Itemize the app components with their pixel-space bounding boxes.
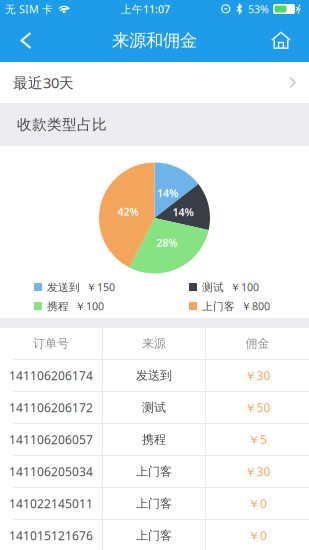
staticText: ￥30 bbox=[244, 463, 270, 479]
staticText: 141022145011 bbox=[9, 495, 93, 511]
staticText: 上门客 bbox=[136, 496, 172, 511]
staticText: 携程 bbox=[142, 432, 166, 447]
staticText: 测试 ￥100 bbox=[202, 280, 259, 294]
button[interactable]: 首页 bbox=[259, 19, 303, 62]
staticText: ￥30 bbox=[244, 367, 270, 383]
staticText: 14% bbox=[172, 205, 193, 219]
staticText: 28% bbox=[156, 235, 177, 250]
staticText: 上门客 ￥800 bbox=[202, 299, 270, 313]
staticText: 42% bbox=[118, 204, 139, 219]
staticText: 141106206057 bbox=[9, 431, 93, 447]
staticText: 发送到 bbox=[136, 368, 172, 383]
staticText: 无 SIM 卡 bbox=[5, 2, 53, 16]
staticText: 141015121676 bbox=[9, 527, 93, 543]
staticText: ￥5 bbox=[248, 431, 267, 447]
staticText: 53% bbox=[248, 2, 269, 16]
staticText: 141106205034 bbox=[9, 463, 93, 479]
staticText: 141106206172 bbox=[9, 399, 93, 415]
staticText: 上门客 bbox=[136, 528, 172, 543]
staticText: 最近30天 bbox=[13, 73, 74, 92]
staticText: 来源和佣金 bbox=[112, 30, 197, 51]
staticText: 来源 bbox=[142, 336, 166, 351]
staticText: 发送到 ￥150 bbox=[47, 280, 115, 294]
staticText: 测试 bbox=[142, 400, 166, 415]
staticText: 携程 ￥100 bbox=[47, 299, 104, 313]
staticText: 收款类型占比 bbox=[17, 115, 107, 133]
staticText: 上午11:07 bbox=[121, 2, 170, 16]
staticText: ￥0 bbox=[248, 527, 267, 543]
staticText: 141106206174 bbox=[9, 367, 93, 383]
staticText: 佣金 bbox=[245, 336, 269, 351]
staticText: 订单号 bbox=[33, 336, 69, 351]
staticText: ￥0 bbox=[248, 495, 267, 511]
staticText: 上门客 bbox=[136, 464, 172, 479]
button[interactable]: 最近30天 bbox=[0, 62, 309, 103]
staticText: 14% bbox=[157, 186, 178, 200]
button[interactable]: 返回 bbox=[6, 19, 46, 62]
staticText: ￥50 bbox=[244, 399, 270, 415]
